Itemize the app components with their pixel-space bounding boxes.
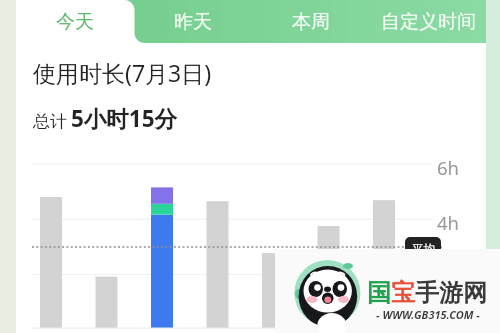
staticText: 总计 — [33, 111, 67, 132]
staticText: 4h — [437, 210, 460, 235]
staticText: 平均 — [412, 242, 435, 256]
staticText: 使用时长(7月3日) — [33, 57, 212, 88]
staticText: - WWW.GB315.COM - — [376, 307, 480, 322]
staticText: 5小时15分 — [71, 103, 178, 134]
staticText: 6h — [437, 155, 460, 180]
staticText: 昨天 — [174, 10, 212, 34]
button[interactable]: 昨天 — [134, 0, 252, 43]
staticText: 今天 — [56, 10, 94, 34]
button[interactable]: 自定义时间 — [370, 0, 486, 43]
button[interactable]: 本周 — [252, 0, 370, 43]
staticText: 国 — [367, 278, 391, 308]
button[interactable]: 平均 — [405, 237, 441, 256]
staticText: 手游网 — [415, 278, 487, 308]
staticText: 本周 — [292, 10, 330, 34]
button[interactable]: 今天 — [16, 0, 134, 43]
staticText: 自定义时间 — [381, 10, 476, 34]
staticText: 宝 — [391, 278, 415, 308]
